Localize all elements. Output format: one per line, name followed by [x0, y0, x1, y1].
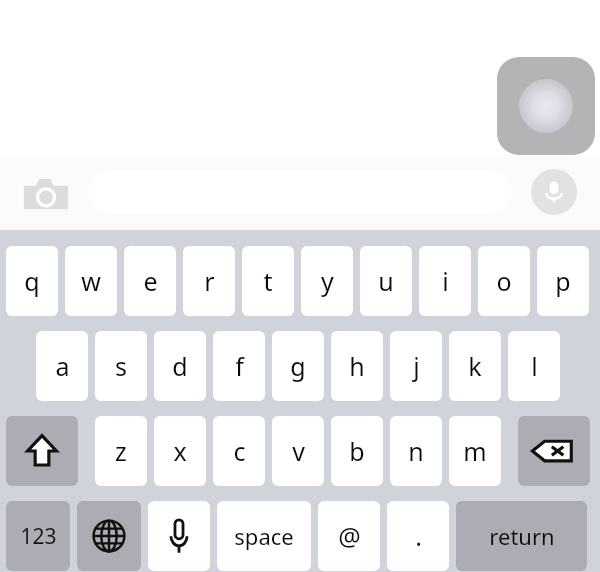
staticText: x [173, 434, 187, 468]
staticText: u [378, 264, 394, 298]
button[interactable]: n [390, 416, 442, 486]
button[interactable]: . [387, 501, 449, 571]
button[interactable]: b [331, 416, 383, 486]
staticText: a [55, 349, 70, 383]
staticText: s [115, 349, 127, 383]
staticText: b [349, 434, 365, 468]
staticText: j [413, 349, 420, 383]
staticText: l [531, 349, 538, 383]
button[interactable]: Shift [6, 416, 78, 486]
button[interactable]: z [95, 416, 147, 486]
button[interactable]: Dictate [531, 169, 577, 215]
button[interactable]: g [272, 331, 324, 401]
staticText: d [172, 349, 188, 383]
staticText: return [489, 521, 555, 551]
button[interactable]: l [508, 331, 560, 401]
staticText: o [496, 264, 512, 298]
button[interactable]: d [154, 331, 206, 401]
button[interactable]: x [154, 416, 206, 486]
button[interactable]: r [183, 246, 235, 316]
staticText: g [290, 349, 306, 383]
button[interactable]: Backspace [518, 416, 590, 486]
button[interactable]: App icon [497, 57, 595, 155]
button[interactable]: return [456, 501, 587, 571]
button[interactable]: t [242, 246, 294, 316]
button[interactable]: j [390, 331, 442, 401]
button[interactable]: i [419, 246, 471, 316]
button[interactable]: u [360, 246, 412, 316]
staticText: i [442, 264, 449, 298]
button[interactable]: m [449, 416, 501, 486]
staticText: m [463, 434, 487, 468]
button[interactable]: s [95, 331, 147, 401]
staticText: z [115, 434, 127, 468]
staticText: space [234, 521, 294, 551]
staticText: . [415, 519, 422, 553]
staticText: q [24, 264, 40, 298]
staticText: f [235, 349, 244, 383]
button[interactable]: h [331, 331, 383, 401]
button[interactable]: e [124, 246, 176, 316]
staticText: y [321, 264, 334, 298]
button[interactable]: q [6, 246, 58, 316]
button[interactable]: c [213, 416, 265, 486]
button[interactable]: 123 [6, 501, 70, 571]
button[interactable]: Dictate [148, 501, 210, 571]
button[interactable]: k [449, 331, 501, 401]
button[interactable]: w [65, 246, 117, 316]
button[interactable]: y [301, 246, 353, 316]
staticText: @ [338, 519, 361, 553]
staticText: w [81, 264, 101, 298]
button[interactable]: p [537, 246, 589, 316]
staticText: k [468, 349, 482, 383]
staticText: 123 [20, 522, 57, 551]
button[interactable]: a [36, 331, 88, 401]
staticText: c [233, 434, 246, 468]
button[interactable]: f [213, 331, 265, 401]
button[interactable]: v [272, 416, 324, 486]
staticText: p [555, 264, 571, 298]
staticText: t [263, 264, 273, 298]
staticText: v [292, 434, 305, 468]
staticText: h [349, 349, 365, 383]
button[interactable]: @ [318, 501, 380, 571]
staticText: n [408, 434, 424, 468]
button[interactable]: Change keyboard [77, 501, 141, 571]
staticText: r [204, 264, 215, 298]
button[interactable]: space [217, 501, 311, 571]
staticText: e [143, 264, 158, 298]
button[interactable]: Camera [18, 173, 74, 215]
button[interactable]: o [478, 246, 530, 316]
